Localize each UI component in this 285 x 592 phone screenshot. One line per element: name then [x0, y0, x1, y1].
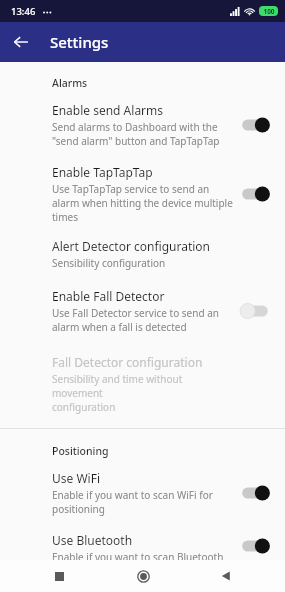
staticText: Send alarms to Dashboard with the "send …	[52, 120, 220, 148]
staticText: Use TapTapTap service to send an alarm w…	[52, 182, 233, 224]
button[interactable]: Toggle Enable Fall Detector	[235, 298, 275, 324]
button[interactable]: Toggle Use WiFi	[235, 480, 275, 506]
staticText: Enable if you want to scan WiFi for posi…	[52, 488, 213, 516]
button[interactable]: Fall Detector configuration	[0, 354, 285, 414]
button[interactable]: Enable Fall Detector	[0, 288, 285, 334]
button[interactable]: Home	[130, 563, 156, 589]
button[interactable]: Toggle Use Bluetooth	[235, 533, 275, 559]
button[interactable]: Back	[213, 563, 239, 589]
button[interactable]: Alert Detector configuration	[0, 238, 285, 270]
staticText: Sensibility and time without movement co…	[52, 372, 235, 414]
staticText: Sensibility configuration	[52, 256, 166, 270]
staticText: Enable TapTapTap	[52, 164, 153, 180]
staticText: Use WiFi	[52, 470, 100, 486]
button[interactable]: Use Bluetooth	[0, 532, 285, 560]
button[interactable]: Enable TapTapTap	[0, 164, 285, 224]
staticText: Enable send Alarms	[52, 102, 164, 118]
staticText: Enable if you want to scan Bluetooth for…	[52, 550, 224, 560]
staticText: Enable Fall Detector	[52, 288, 165, 304]
staticText: Alarms	[52, 76, 88, 90]
button[interactable]: Recent apps	[46, 563, 72, 589]
staticText: Fall Detector configuration	[52, 354, 203, 370]
button[interactable]: Enable send Alarms	[0, 102, 285, 148]
staticText: 100	[263, 7, 275, 16]
staticText: Positioning	[52, 444, 109, 458]
staticText: 13:46	[11, 5, 36, 18]
staticText: Alert Detector configuration	[52, 238, 211, 254]
staticText: Use Fall Detector service to send an ala…	[52, 306, 219, 334]
button[interactable]: Toggle Enable TapTapTap	[235, 181, 275, 207]
button[interactable]: Toggle Enable send Alarms	[235, 112, 275, 138]
button[interactable]: Use WiFi	[0, 470, 285, 516]
button[interactable]: Back	[6, 27, 36, 57]
staticText: Use Bluetooth	[52, 532, 133, 548]
staticText: Settings	[50, 32, 109, 52]
